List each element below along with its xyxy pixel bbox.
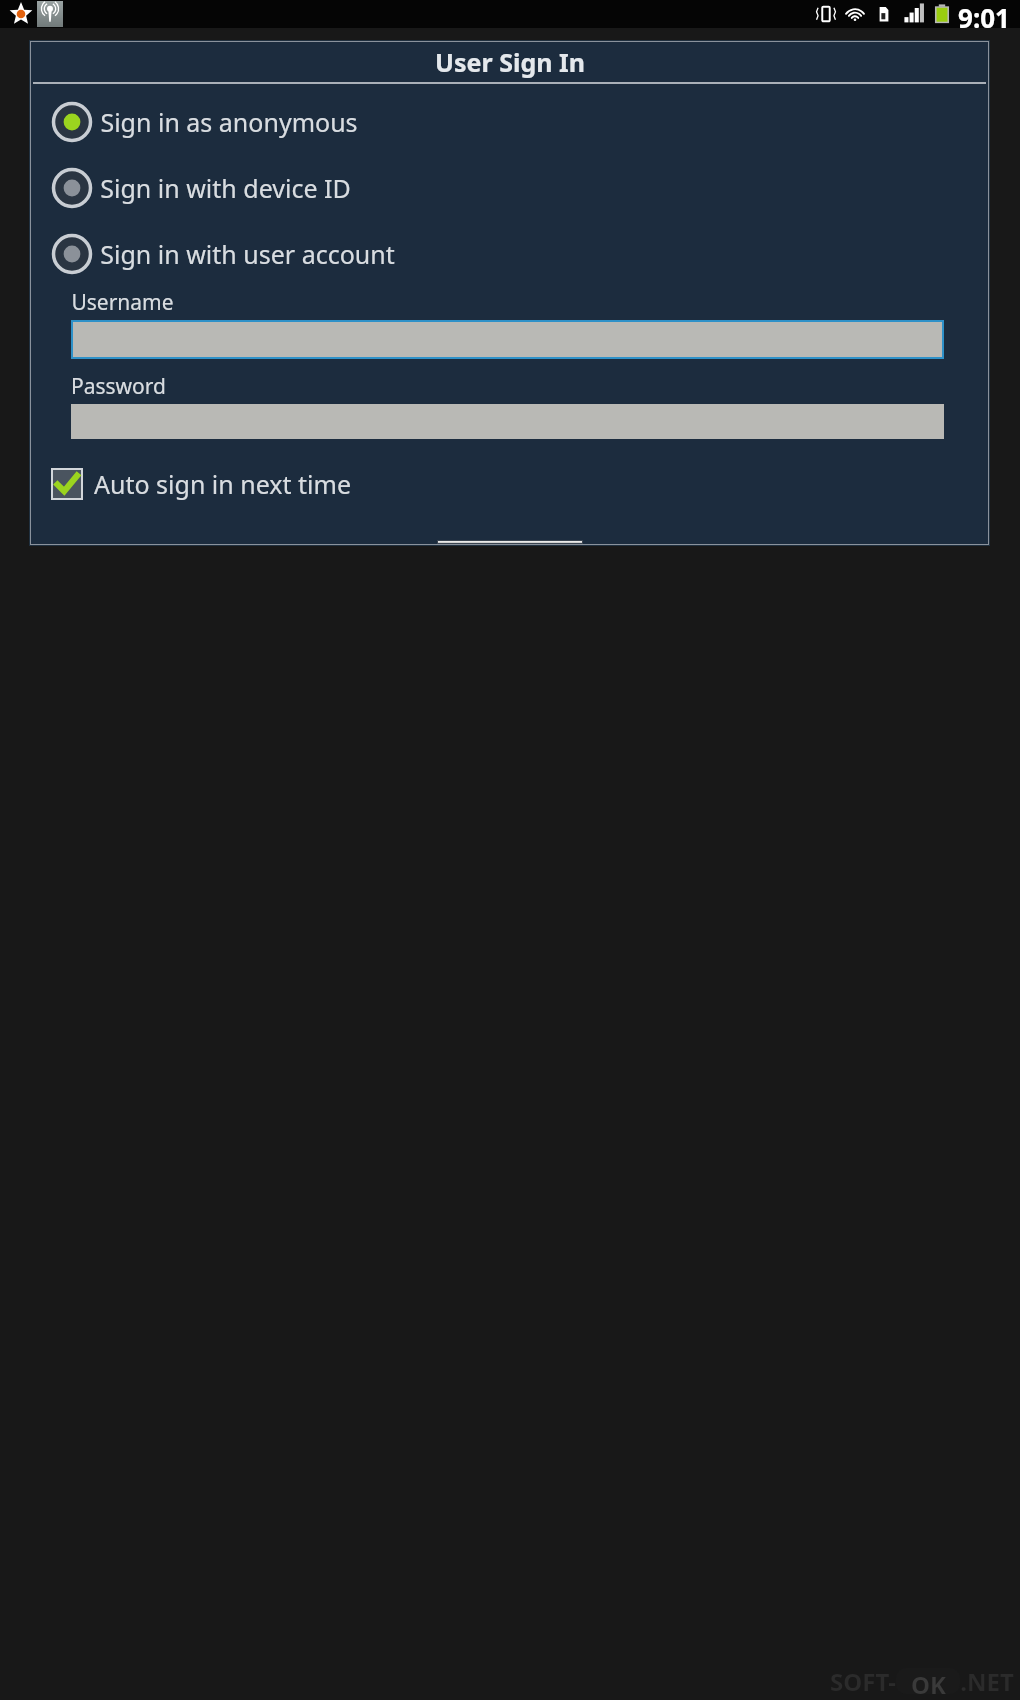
button[interactable]: Sign in with device ID	[51, 163, 988, 213]
staticText: SOFT-	[830, 1665, 896, 1698]
staticText: .NET	[960, 1665, 1014, 1698]
staticText: Sign in with user account	[100, 237, 395, 271]
button[interactable]: Sign in as anonymous	[51, 97, 988, 147]
staticText: 9:01	[958, 0, 1010, 28]
button[interactable]: Auto sign in next time	[51, 461, 988, 507]
staticText: Sign In	[471, 541, 550, 543]
staticText: Sign in as anonymous	[100, 105, 358, 139]
button[interactable]: Sign in with user account	[51, 229, 988, 279]
staticText: OK	[911, 1668, 946, 1694]
staticText: Auto sign in next time	[94, 467, 351, 501]
staticText: Username	[71, 288, 174, 317]
staticText: User Sign In	[435, 45, 585, 79]
button[interactable]: Sign In	[438, 541, 582, 543]
staticText: Sign in with device ID	[100, 171, 351, 205]
staticText: Password	[71, 372, 166, 401]
